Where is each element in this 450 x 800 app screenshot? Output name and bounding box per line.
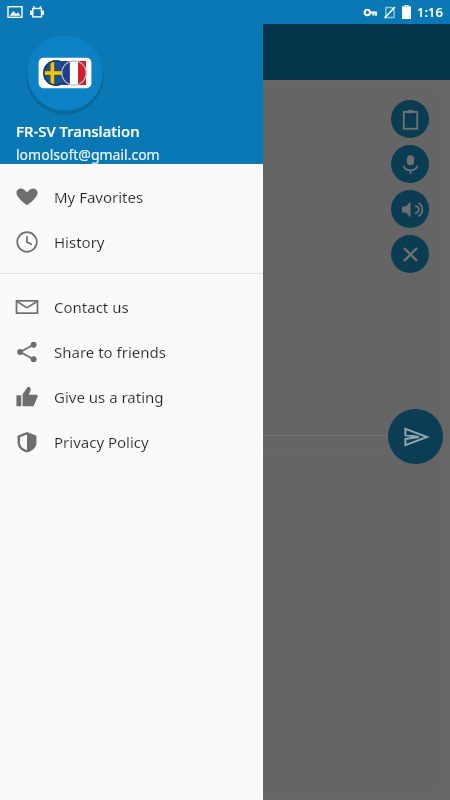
staticText: History — [54, 232, 105, 252]
button[interactable]: Contact us — [0, 284, 263, 329]
button[interactable]: Voice input — [391, 145, 429, 183]
staticText: 1:16 — [417, 3, 443, 21]
button[interactable]: Clear text — [391, 235, 429, 273]
button[interactable]: Speak text — [391, 190, 429, 228]
button[interactable]: Open navigation drawer — [16, 40, 40, 64]
button[interactable]: Share to friends — [0, 329, 263, 374]
button[interactable]: History — [0, 219, 263, 264]
button[interactable]: Give us a rating — [0, 374, 263, 419]
staticText: lomolsoft@gmail.com — [16, 145, 160, 164]
button[interactable]: Privacy Policy — [0, 419, 263, 464]
staticText: Share to friends — [54, 342, 166, 362]
button[interactable]: My Favorites — [0, 174, 263, 219]
staticText: Give us a rating — [54, 387, 164, 407]
staticText: My Favorites — [54, 187, 144, 207]
staticText: FR-SV Translation — [16, 121, 140, 141]
staticText: Privacy Policy — [54, 432, 149, 452]
button[interactable]: Paste from clipboard — [391, 100, 429, 138]
staticText: Swedish — [186, 39, 264, 66]
staticText: Contact us — [54, 297, 129, 317]
staticText: Type text to translate — [28, 104, 197, 127]
button[interactable]: Translate — [388, 409, 443, 464]
